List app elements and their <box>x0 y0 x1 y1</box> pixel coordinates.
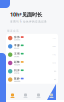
staticText: 赵敏 <box>14 60 20 64</box>
button[interactable]: Tab <box>6 92 19 100</box>
button[interactable]: 李娜 <box>6 42 58 50</box>
button[interactable]: Tab <box>32 92 45 100</box>
staticText: 王强 <box>14 52 20 55</box>
staticText: 谢谢你的帮助 <box>14 81 20 82</box>
staticText: 张伟 <box>14 35 20 39</box>
staticText: 最近会话 <box>7 29 19 32</box>
staticText: 我马上过去 <box>14 47 19 49</box>
staticText: 刘洋 <box>14 69 20 72</box>
staticText: 会议稍后开始 <box>14 39 20 41</box>
button[interactable]: Tab <box>45 92 58 100</box>
button[interactable]: Tab <box>19 92 32 100</box>
button[interactable]: 张伟 <box>6 34 58 42</box>
staticText: 昨天 <box>54 70 56 72</box>
button[interactable]: 赵敏 <box>6 59 58 67</box>
staticText: 13:05 <box>52 45 56 47</box>
button[interactable]: 王强 <box>6 50 58 59</box>
staticText: 文件已发送 <box>14 56 19 57</box>
staticText: 本周与 6 位伙伴的交流记录 <box>10 20 47 23</box>
staticText: 陈静 <box>14 77 20 80</box>
staticText: 昨天 <box>54 79 56 80</box>
staticText: 10h+见面时长 <box>10 11 42 18</box>
staticText: 好的没问题 <box>14 72 19 74</box>
staticText: 14:20 <box>52 37 56 39</box>
button[interactable]: 刘洋 <box>6 67 58 75</box>
staticText: 李娜 <box>14 44 20 47</box>
button[interactable]: 陈静 <box>6 75 58 84</box>
staticText: 11:42 <box>52 54 56 56</box>
